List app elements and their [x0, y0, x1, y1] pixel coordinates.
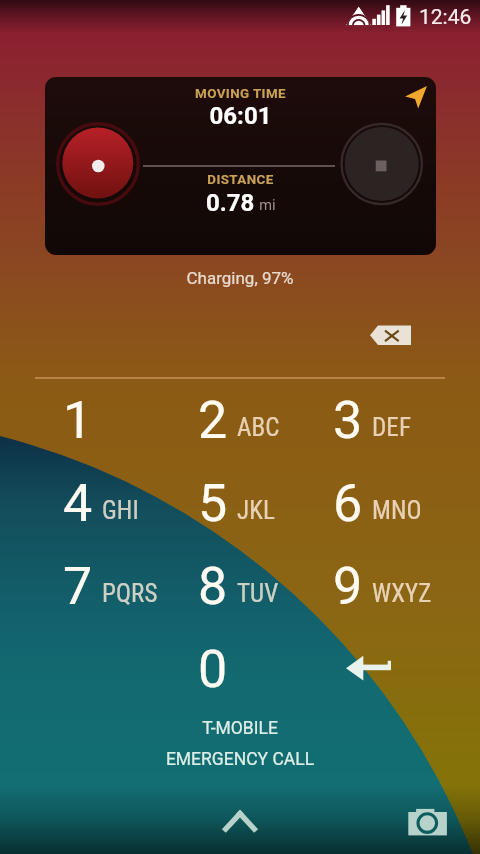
- button[interactable]: 5: [170, 465, 305, 541]
- staticText: 06:01: [45, 102, 436, 130]
- button[interactable]: 8: [170, 548, 305, 624]
- button[interactable]: Charging, 97%: [0, 268, 480, 288]
- button[interactable]: Enter: [336, 646, 402, 690]
- staticText: 1: [63, 390, 93, 451]
- button[interactable]: 9: [305, 548, 440, 624]
- staticText: GHI: [102, 496, 139, 525]
- staticText: ABC: [237, 413, 280, 442]
- button[interactable]: 4: [35, 465, 170, 541]
- button[interactable]: EMERGENCY CALL: [0, 749, 480, 770]
- staticText: 5: [198, 473, 228, 534]
- staticText: 6: [333, 473, 363, 534]
- staticText: WXYZ: [372, 579, 432, 608]
- button[interactable]: MOVING TIME: [45, 77, 436, 255]
- button[interactable]: Delete: [358, 312, 422, 358]
- staticText: 0.78: [206, 189, 255, 217]
- staticText: PQRS: [102, 579, 158, 608]
- button[interactable]: 1: [35, 382, 170, 458]
- staticText: DEF: [372, 413, 412, 442]
- button[interactable]: 2: [170, 382, 305, 458]
- staticText: MOVING TIME: [45, 86, 436, 102]
- button[interactable]: Camera: [398, 798, 456, 846]
- staticText: 2: [198, 390, 228, 451]
- button[interactable]: 0: [170, 631, 305, 707]
- button[interactable]: 3: [305, 382, 440, 458]
- button[interactable]: 7: [35, 548, 170, 624]
- button[interactable]: Unlock: [210, 798, 270, 844]
- staticText: 12:46: [419, 5, 472, 30]
- staticText: mi: [259, 195, 276, 214]
- staticText: DISTANCE: [45, 172, 436, 188]
- staticText: MNO: [372, 496, 422, 525]
- button[interactable]: T-MOBILE: [0, 718, 480, 739]
- staticText: 4: [63, 473, 93, 534]
- staticText: 8: [198, 556, 228, 617]
- staticText: TUV: [237, 579, 279, 608]
- staticText: 7: [63, 556, 93, 617]
- staticText: 0: [198, 639, 228, 700]
- staticText: JKL: [237, 496, 275, 525]
- staticText: 9: [333, 556, 363, 617]
- staticText: 3: [333, 390, 363, 451]
- button[interactable]: 6: [305, 465, 440, 541]
